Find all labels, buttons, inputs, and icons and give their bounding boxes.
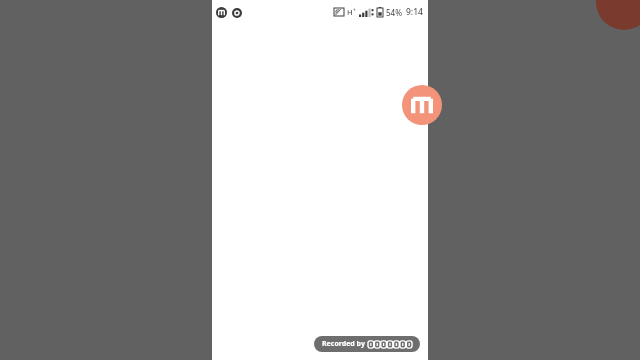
staticText: 9:14: [406, 6, 423, 18]
staticText: +: [353, 7, 356, 14]
staticText: 54%: [386, 7, 402, 18]
staticText: H: [347, 7, 353, 17]
button[interactable]: Mobizen watermark: [402, 85, 442, 125]
staticText: Recorded by: [322, 339, 365, 349]
